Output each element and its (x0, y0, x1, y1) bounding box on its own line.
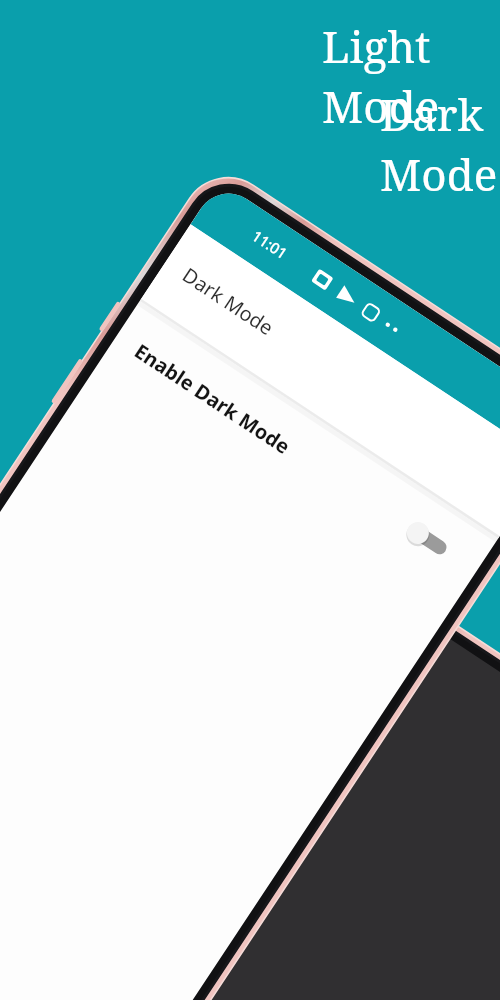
button[interactable]: Light Mode Dark Mode promotional screen (0, 0, 500, 1000)
